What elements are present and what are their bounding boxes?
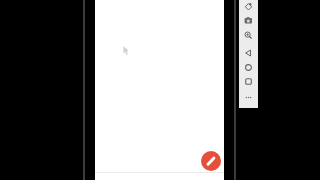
button[interactable] — [239, 29, 258, 43]
button[interactable] — [239, 61, 258, 75]
button[interactable] — [239, 91, 258, 105]
button[interactable] — [239, 0, 258, 14]
button[interactable] — [239, 14, 258, 28]
button[interactable] — [239, 46, 258, 60]
button[interactable] — [239, 75, 258, 89]
button[interactable] — [201, 151, 221, 171]
